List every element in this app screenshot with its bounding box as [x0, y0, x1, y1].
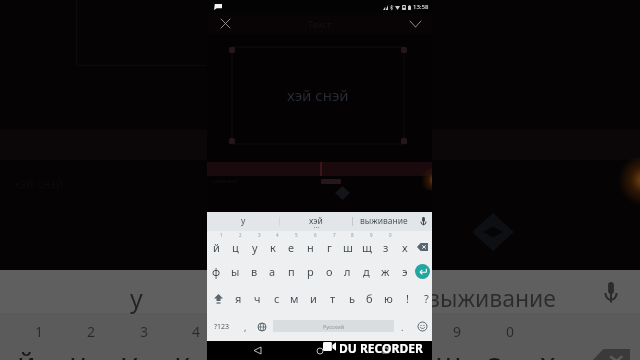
staticText: хэй	[309, 215, 323, 227]
staticText: 5	[295, 232, 298, 238]
staticText: а	[269, 264, 276, 279]
button[interactable]: я	[229, 285, 248, 312]
button[interactable]: хэй	[280, 212, 352, 231]
button[interactable]: Home	[308, 341, 332, 360]
button[interactable]: 4	[263, 231, 282, 258]
button[interactable]: Русский	[273, 320, 394, 332]
button[interactable]: п	[282, 258, 301, 285]
staticText: 1	[35, 322, 44, 341]
button[interactable]: х	[395, 231, 414, 258]
button[interactable]: 5	[282, 231, 301, 258]
staticText: х	[540, 343, 556, 360]
button[interactable]: 9	[357, 231, 376, 258]
button[interactable]: Recents	[373, 341, 397, 360]
button[interactable]: м	[285, 285, 304, 312]
button[interactable]: Done	[402, 13, 428, 34]
staticText: 7	[333, 232, 336, 238]
staticText: щ	[362, 240, 372, 255]
staticText: т	[330, 291, 336, 306]
staticText: б	[366, 291, 373, 306]
button[interactable]: Enter	[415, 264, 430, 279]
staticText: 5	[244, 322, 253, 341]
button[interactable]: ж	[376, 258, 395, 285]
staticText: й	[17, 343, 36, 360]
button[interactable]: Backspace	[413, 231, 432, 258]
button[interactable]: 1	[207, 231, 226, 258]
button[interactable]: Change language	[254, 312, 270, 341]
button[interactable]: ф	[207, 258, 226, 285]
staticText: р	[307, 264, 314, 279]
button[interactable]: о	[320, 258, 339, 285]
staticText: !	[406, 291, 409, 306]
staticText: ж	[381, 264, 390, 279]
button[interactable]: ?123	[209, 312, 235, 341]
button[interactable]: Back	[245, 341, 269, 360]
button[interactable]: 0	[376, 231, 395, 258]
staticText: с	[274, 291, 280, 306]
button[interactable]: и	[304, 285, 323, 312]
staticText: Текст	[308, 18, 331, 30]
button[interactable]: ю	[379, 285, 398, 312]
button[interactable]: Voice input	[415, 212, 432, 231]
staticText: г	[331, 343, 345, 360]
button[interactable]: 3	[245, 231, 264, 258]
staticText: 4	[192, 322, 201, 341]
button[interactable]: ы	[226, 258, 245, 285]
button[interactable]: б	[360, 285, 379, 312]
button[interactable]: р	[301, 258, 320, 285]
button[interactable]: Emoji	[413, 312, 431, 341]
button[interactable]: 6	[301, 231, 320, 258]
button[interactable]: ч	[248, 285, 267, 312]
button[interactable]: д	[357, 258, 376, 285]
staticText: выживание	[427, 282, 557, 313]
staticText: д	[363, 264, 370, 279]
button[interactable]: Shift	[207, 285, 229, 312]
staticText: э	[402, 264, 408, 279]
button[interactable]: 7	[320, 231, 339, 258]
button[interactable]: выживание	[353, 212, 415, 231]
staticText: 3	[140, 322, 149, 341]
staticText: 9	[370, 232, 373, 238]
staticText: 0	[389, 232, 392, 238]
staticText: .	[401, 321, 404, 333]
staticText: 0	[506, 322, 515, 341]
staticText: х	[402, 240, 408, 255]
button[interactable]: т	[323, 285, 342, 312]
button[interactable]: ь	[342, 285, 361, 312]
button[interactable]: 2	[226, 231, 245, 258]
staticText: о	[326, 264, 333, 279]
button[interactable]: э	[395, 258, 414, 285]
staticText: у	[252, 240, 258, 255]
button[interactable]: л	[338, 258, 357, 285]
staticText: к	[174, 343, 190, 360]
button[interactable]: у	[207, 212, 279, 231]
staticText: г	[327, 240, 332, 255]
staticText: выживание	[360, 215, 408, 227]
button[interactable]: !	[398, 285, 417, 312]
button[interactable]: Close	[212, 13, 238, 34]
staticText: 9	[453, 322, 462, 341]
staticText: 2	[239, 232, 242, 238]
staticText: 3	[258, 232, 261, 238]
button[interactable]: ,	[237, 312, 253, 341]
staticText: 2	[87, 322, 96, 341]
button[interactable]: в	[245, 258, 264, 285]
staticText: ш	[343, 240, 353, 255]
button[interactable]: 8	[338, 231, 357, 258]
button[interactable]: а	[263, 258, 282, 285]
button[interactable]: с	[267, 285, 286, 312]
staticText: 8	[351, 232, 354, 238]
staticText: 7	[349, 322, 358, 341]
staticText: п	[288, 264, 295, 279]
staticText: в	[251, 264, 258, 279]
staticText: 1	[220, 232, 223, 238]
staticText: 4	[276, 232, 279, 238]
staticText: з	[488, 343, 503, 360]
staticText: я	[235, 291, 242, 306]
button[interactable]: ?	[417, 285, 436, 312]
staticText: ь	[349, 291, 355, 306]
button[interactable]: .	[395, 312, 409, 341]
